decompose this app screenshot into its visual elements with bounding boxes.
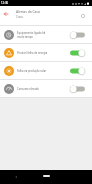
staticText: Alertas da Casa — [16, 9, 40, 13]
staticText: Equipamento ligado há muito tempo — [17, 31, 48, 39]
button[interactable]: Ativado — [70, 67, 85, 75]
staticText: 12:36 — [1, 1, 9, 5]
button[interactable]: Desativado — [70, 31, 85, 39]
button[interactable]: Voltar — [14, 175, 17, 178]
button[interactable]: Help — [79, 12, 87, 20]
button[interactable]: Desativado — [70, 85, 85, 93]
staticText: Consumo elevado — [17, 87, 48, 91]
button[interactable]: Ativado — [70, 49, 85, 57]
button[interactable]: Falha na produção solar — [0, 62, 92, 79]
button[interactable]: Home — [43, 175, 50, 177]
button[interactable]: Equipamento ligado há muito tempo — [0, 26, 92, 43]
button[interactable]: Voltar — [2, 10, 10, 18]
staticText: Possível falha de energia — [17, 51, 48, 55]
staticText: Casa — [16, 15, 23, 19]
button[interactable]: Possível falha de energia — [0, 44, 92, 61]
button[interactable]: Consumo elevado — [0, 80, 92, 97]
staticText: Falha na produção solar — [17, 69, 48, 73]
